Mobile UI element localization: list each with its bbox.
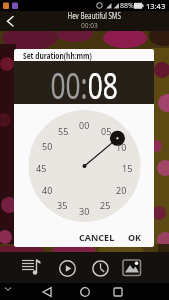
- staticText: 00: [79, 119, 90, 131]
- button[interactable]: [18, 255, 44, 279]
- staticText: 00:08: [51, 61, 118, 104]
- staticText: CANCEL: [79, 231, 115, 243]
- staticText: 35: [57, 199, 68, 211]
- staticText: 88%: [120, 1, 134, 11]
- button[interactable]: [40, 285, 54, 299]
- button[interactable]: CANCEL: [76, 229, 118, 244]
- button[interactable]: [111, 285, 125, 299]
- button[interactable]: OK: [123, 229, 147, 244]
- staticText: 40: [42, 184, 53, 196]
- staticText: 00:03: [81, 21, 98, 29]
- staticText: 25: [100, 199, 111, 211]
- button[interactable]: [89, 257, 112, 280]
- staticText: 13:43: [146, 1, 166, 11]
- button[interactable]: [3, 14, 18, 29]
- staticText: 30: [79, 205, 90, 217]
- staticText: 45: [36, 162, 47, 174]
- staticText: Set duration(hh:mm): [23, 50, 92, 62]
- staticText: 15: [122, 162, 133, 174]
- staticText: 50: [42, 140, 53, 152]
- staticText: 05: [101, 125, 112, 137]
- button[interactable]: [120, 257, 145, 279]
- button[interactable]: [56, 257, 79, 280]
- staticText: 10: [116, 141, 127, 153]
- button[interactable]: [78, 285, 92, 299]
- staticText: Hey Beautiful SMS: [68, 10, 121, 19]
- staticText: 20: [116, 184, 127, 196]
- staticText: OK: [128, 231, 142, 243]
- staticText: 55: [58, 125, 69, 137]
